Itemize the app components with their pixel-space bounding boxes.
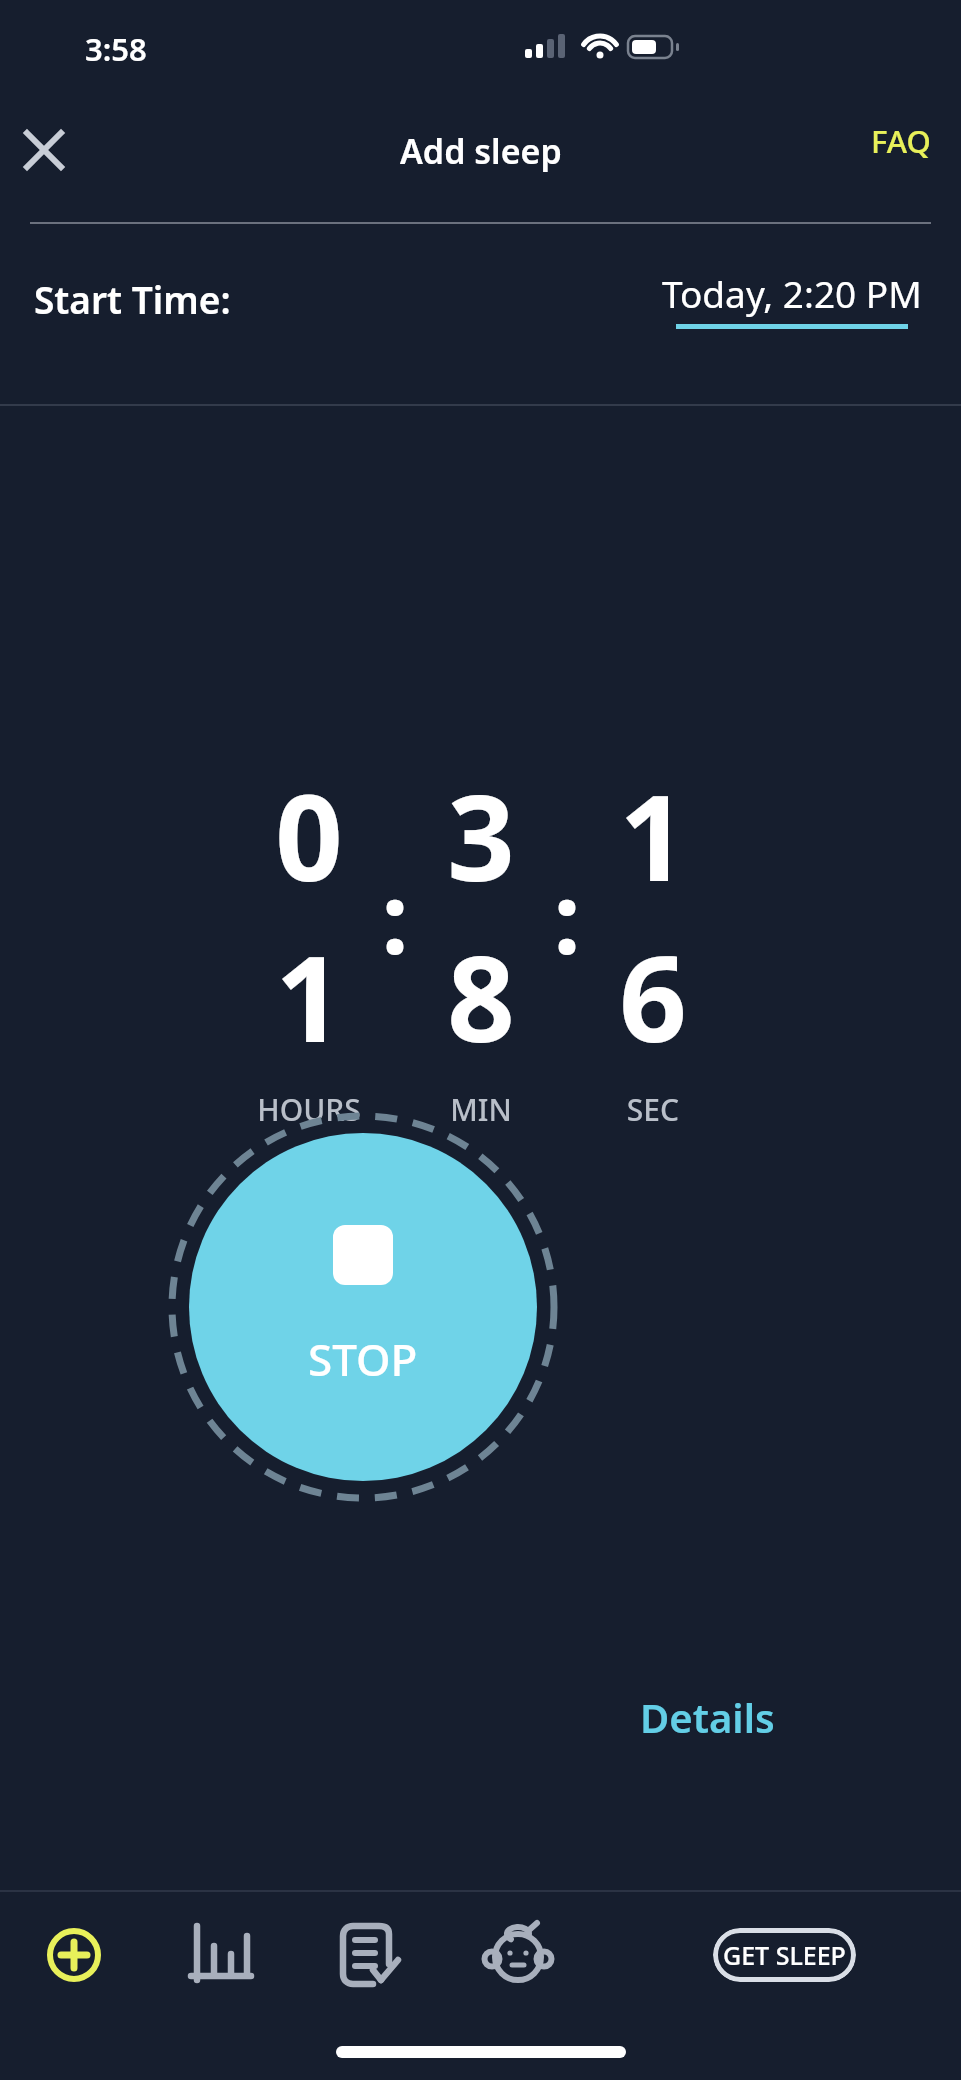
button[interactable]: Add (0, 1890, 148, 2020)
staticText: Details (640, 1690, 775, 1744)
staticText: 16 (591, 755, 715, 1077)
staticText: Today, 2:20 PM (662, 268, 922, 318)
staticText: FAQ (871, 120, 931, 162)
staticText: Add sleep (400, 128, 562, 174)
button[interactable]: FAQ (859, 102, 943, 180)
staticText: 3:58 (85, 28, 147, 70)
staticText: HOURS (247, 1089, 371, 1130)
staticText: Start Time: (34, 274, 231, 324)
button[interactable]: Start Time: (0, 224, 961, 405)
button[interactable]: STOP (189, 1133, 537, 1481)
staticText: : (371, 851, 419, 982)
staticText: 38 (419, 755, 543, 1077)
button[interactable]: GET SLEEP (713, 1928, 856, 1982)
button[interactable]: Trends (148, 1890, 296, 2020)
staticText: SEC (591, 1089, 715, 1130)
staticText: MIN (419, 1089, 543, 1130)
button[interactable]: Details (620, 1676, 795, 1758)
button[interactable]: Baby profile (444, 1890, 592, 2020)
button[interactable]: Journal (296, 1890, 444, 2020)
staticText: GET SLEEP (723, 1938, 846, 1972)
staticText: : (543, 851, 591, 982)
staticText: 01 (247, 755, 371, 1077)
staticText: STOP (308, 1329, 418, 1389)
button[interactable]: Close (8, 114, 80, 186)
